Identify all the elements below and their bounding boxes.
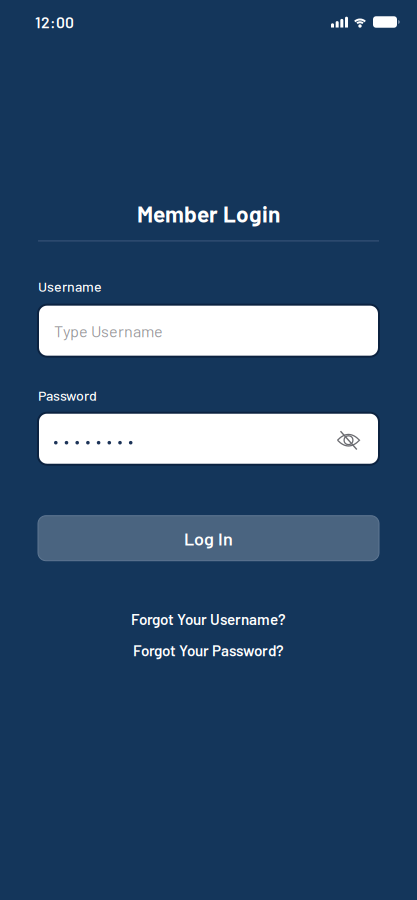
- staticText: Log In: [184, 527, 233, 549]
- staticText: Password: [38, 387, 97, 404]
- button[interactable]: Forgot Your Username?: [131, 610, 286, 628]
- staticText: Forgot Your Password?: [133, 641, 284, 659]
- staticText: Forgot Your Username?: [131, 610, 286, 628]
- button[interactable]: Password: [38, 413, 379, 465]
- button[interactable]: Log In: [38, 516, 379, 561]
- button[interactable]: Show password: [336, 426, 361, 451]
- button[interactable]: Forgot Your Password?: [133, 641, 284, 659]
- staticText: 12:00: [35, 13, 74, 31]
- staticText: Type Username: [54, 321, 163, 340]
- button[interactable]: Type Username: [38, 305, 379, 357]
- staticText: Username: [38, 278, 102, 295]
- staticText: Member Login: [137, 200, 280, 227]
